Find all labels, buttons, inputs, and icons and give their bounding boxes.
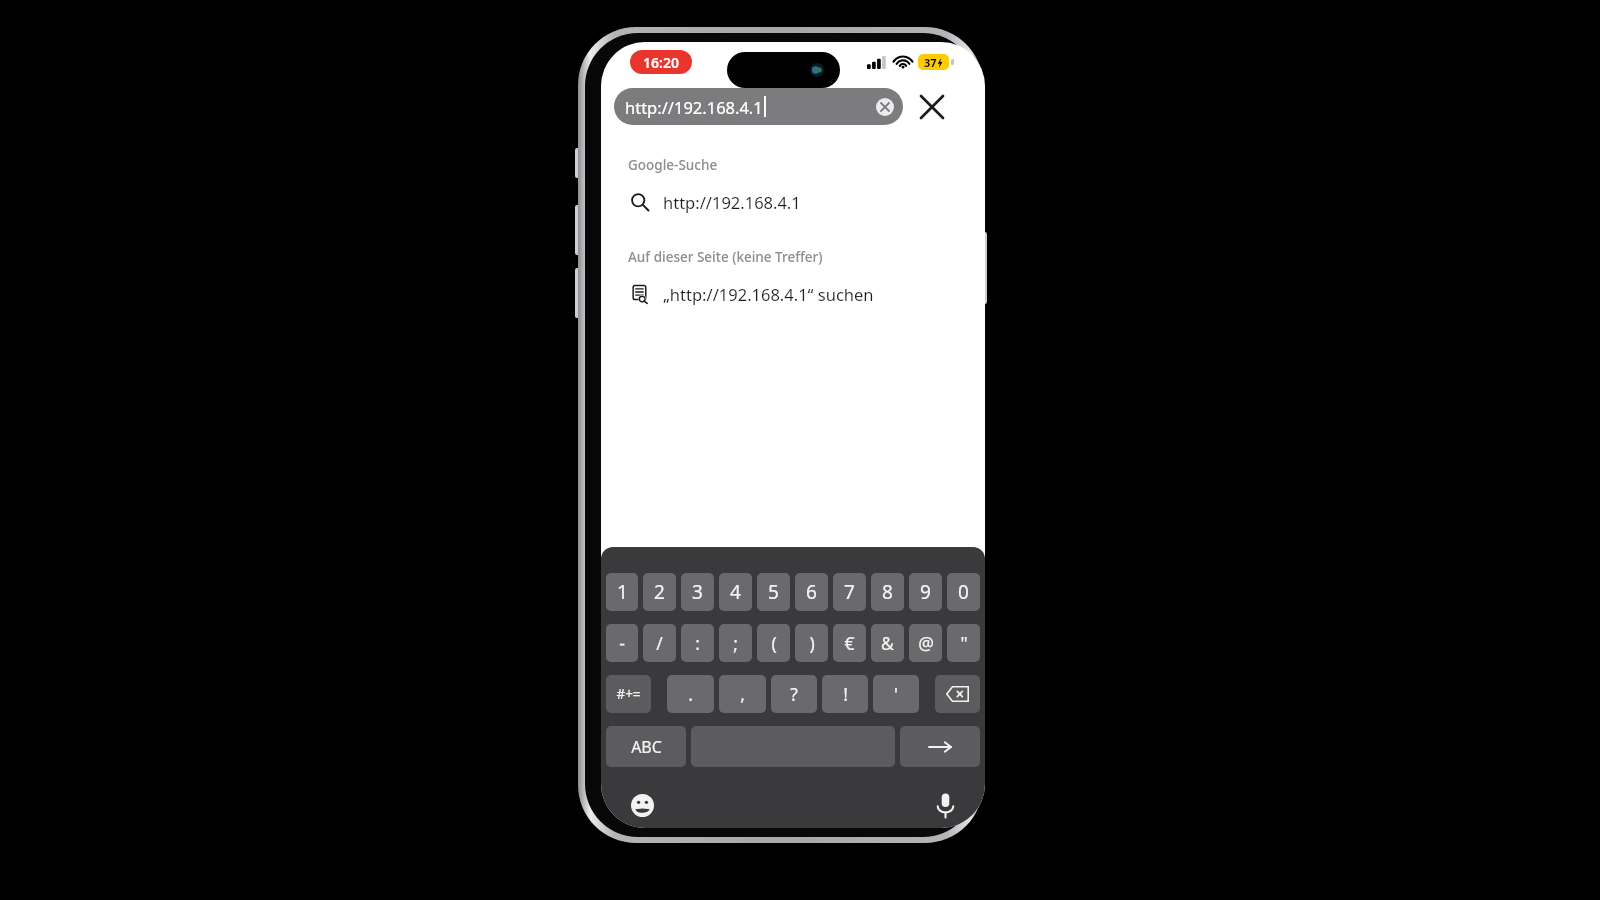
staticText: „http://192.168.4.1“ suchen xyxy=(663,283,874,305)
staticText: " xyxy=(960,631,968,655)
button[interactable]: Emoji xyxy=(631,794,654,817)
staticText: € xyxy=(844,631,855,655)
staticText: Google-Suche xyxy=(628,156,718,174)
button[interactable]: 9 xyxy=(909,573,942,611)
button[interactable]: @ xyxy=(909,624,942,662)
button[interactable]: & xyxy=(871,624,904,662)
button[interactable]: ; xyxy=(719,624,752,662)
button[interactable]: , xyxy=(719,675,766,713)
button[interactable]: 4 xyxy=(719,573,752,611)
staticText: ) xyxy=(809,631,815,655)
staticText: 37 xyxy=(924,55,937,70)
staticText: ( xyxy=(771,631,777,655)
staticText: 2 xyxy=(654,579,665,605)
button[interactable]: http://192.168.4.1 xyxy=(601,183,985,221)
staticText: 0 xyxy=(958,579,969,605)
button[interactable]: Close xyxy=(911,86,953,128)
staticText: ABC xyxy=(631,736,662,758)
button[interactable]: ? xyxy=(771,675,817,713)
button[interactable]: : xyxy=(681,624,714,662)
button[interactable]: ' xyxy=(873,675,919,713)
button[interactable]: Go xyxy=(900,726,980,767)
staticText: http://192.168.4.1 xyxy=(625,96,763,118)
staticText: 1 xyxy=(617,579,628,605)
staticText: 5 xyxy=(768,579,779,605)
staticText: & xyxy=(881,631,894,655)
staticText: 3 xyxy=(692,579,703,605)
button[interactable]: € xyxy=(833,624,866,662)
button[interactable]: 5 xyxy=(757,573,790,611)
staticText: 9 xyxy=(920,579,931,605)
button[interactable]: Backspace xyxy=(935,675,980,713)
button[interactable]: ( xyxy=(757,624,790,662)
staticText: 7 xyxy=(844,579,855,605)
button[interactable]: 0 xyxy=(947,573,980,611)
button[interactable]: 7 xyxy=(833,573,866,611)
button[interactable]: Clear text xyxy=(876,98,894,116)
staticText: . xyxy=(688,682,693,706)
staticText: / xyxy=(656,631,663,655)
button[interactable]: 1 xyxy=(606,573,638,611)
staticText: 8 xyxy=(882,579,893,605)
button[interactable]: ) xyxy=(795,624,828,662)
staticText: Auf dieser Seite (keine Treffer) xyxy=(628,248,823,266)
staticText: ' xyxy=(894,682,898,706)
staticText: 4 xyxy=(730,579,741,605)
button[interactable]: Dictation xyxy=(936,793,955,818)
button[interactable]: #+= xyxy=(606,675,651,713)
button[interactable]: - xyxy=(606,624,638,662)
staticText: ; xyxy=(733,631,738,655)
button[interactable]: ! xyxy=(822,675,868,713)
staticText: - xyxy=(619,631,625,655)
staticText: 16:20 xyxy=(643,53,679,72)
button[interactable]: ABC xyxy=(606,726,686,767)
button[interactable]: http://192.168.4.1 xyxy=(614,88,903,125)
button[interactable]: „http://192.168.4.1“ suchen xyxy=(601,275,985,313)
staticText: 6 xyxy=(806,579,817,605)
staticText: ? xyxy=(790,682,798,706)
button[interactable]: 6 xyxy=(795,573,828,611)
button[interactable]: 8 xyxy=(871,573,904,611)
staticText: @ xyxy=(918,631,934,655)
button[interactable]: 2 xyxy=(643,573,676,611)
staticText: , xyxy=(740,682,745,706)
button[interactable]: . xyxy=(667,675,714,713)
staticText: #+= xyxy=(616,685,641,703)
button[interactable]: " xyxy=(947,624,980,662)
staticText: http://192.168.4.1 xyxy=(663,191,801,213)
staticText: ! xyxy=(843,682,848,706)
button[interactable]: 3 xyxy=(681,573,714,611)
button[interactable]: / xyxy=(643,624,676,662)
staticText: : xyxy=(695,631,700,655)
